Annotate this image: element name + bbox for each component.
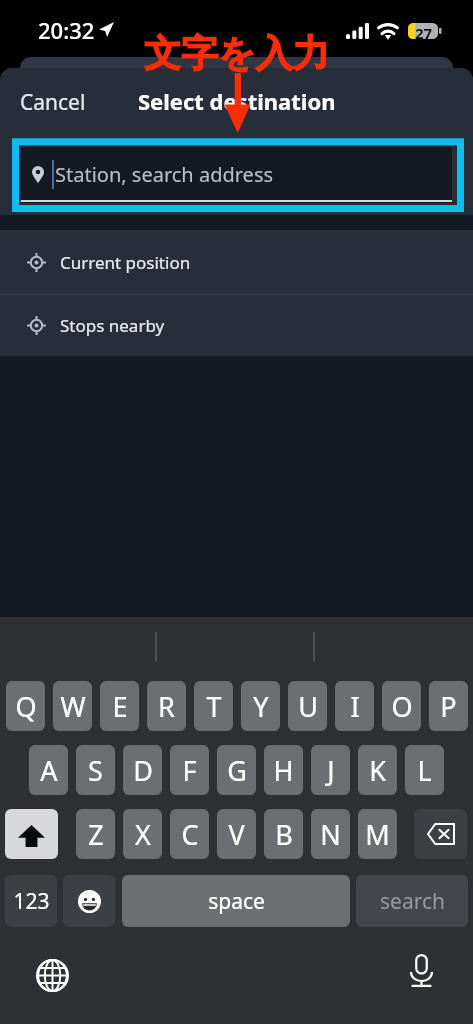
staticText: V	[228, 816, 245, 853]
button[interactable]: Q	[6, 681, 45, 731]
staticText: N	[320, 816, 341, 853]
button[interactable]: E	[100, 681, 139, 731]
button[interactable]: U	[288, 681, 327, 731]
button[interactable]: search	[356, 875, 468, 927]
staticText: B	[275, 816, 293, 853]
staticText: Y	[253, 688, 269, 725]
button[interactable]: O	[382, 681, 421, 731]
button[interactable]: Emoji	[63, 875, 115, 927]
button[interactable]: B	[264, 809, 303, 859]
staticText: H	[273, 752, 294, 789]
button[interactable]: Voice input	[399, 949, 443, 993]
button[interactable]: H	[264, 745, 303, 795]
button[interactable]: Cancel	[0, 80, 106, 125]
button[interactable]: Stops nearby	[0, 295, 473, 356]
staticText: J	[327, 752, 335, 789]
staticText: space	[208, 887, 265, 916]
button[interactable]: 123	[5, 875, 57, 927]
staticText: G	[227, 752, 247, 789]
button[interactable]: N	[311, 809, 350, 859]
button[interactable]: R	[147, 681, 186, 731]
staticText: F	[182, 752, 197, 789]
button[interactable]: A	[29, 745, 68, 795]
staticText: search	[380, 887, 445, 916]
button[interactable]: Switch keyboard	[30, 953, 74, 997]
staticText: Select destination	[138, 86, 336, 116]
staticText: Q	[15, 688, 37, 725]
button[interactable]: Delete	[414, 809, 467, 859]
staticText: D	[133, 752, 153, 789]
staticText: Cancel	[20, 88, 86, 117]
button[interactable]: D	[123, 745, 162, 795]
button[interactable]: S	[76, 745, 115, 795]
button[interactable]: Shift	[5, 809, 58, 859]
staticText: E	[112, 688, 128, 725]
staticText: K	[369, 752, 386, 789]
staticText: P	[440, 688, 457, 725]
button[interactable]: T	[194, 681, 233, 731]
staticText: 123	[13, 887, 50, 916]
button[interactable]: I	[335, 681, 374, 731]
button[interactable]: V	[217, 809, 256, 859]
staticText: S	[88, 752, 103, 789]
button[interactable]: F	[170, 745, 209, 795]
button[interactable]: X	[123, 809, 162, 859]
staticText: W	[60, 688, 86, 725]
button[interactable]: W	[53, 681, 92, 731]
button[interactable]: Y	[241, 681, 280, 731]
staticText: 文字を入力	[144, 30, 330, 77]
staticText: Stops nearby	[60, 314, 165, 337]
staticText: X	[135, 816, 151, 853]
button[interactable]: G	[217, 745, 256, 795]
button[interactable]: M	[358, 809, 397, 859]
staticText: Station, search address	[55, 161, 274, 188]
staticText: I	[350, 688, 360, 725]
button[interactable]: space	[122, 875, 350, 927]
button[interactable]: J	[311, 745, 350, 795]
staticText: U	[298, 688, 318, 725]
staticText: C	[181, 816, 199, 853]
button[interactable]: Station, search address	[21, 147, 452, 203]
button[interactable]: Z	[76, 809, 115, 859]
staticText: T	[206, 688, 222, 725]
button[interactable]: Current position	[0, 230, 473, 294]
button[interactable]: P	[429, 681, 468, 731]
staticText: Z	[88, 816, 104, 853]
button[interactable]: C	[170, 809, 209, 859]
button[interactable]: K	[358, 745, 397, 795]
staticText: L	[417, 752, 432, 789]
button[interactable]: L	[405, 745, 444, 795]
staticText: 27	[407, 23, 440, 43]
staticText: M	[365, 816, 390, 853]
staticText: A	[40, 752, 58, 789]
staticText: Current position	[60, 251, 191, 274]
staticText: R	[158, 688, 175, 725]
staticText: 20:32	[38, 15, 95, 45]
staticText: O	[391, 688, 413, 725]
